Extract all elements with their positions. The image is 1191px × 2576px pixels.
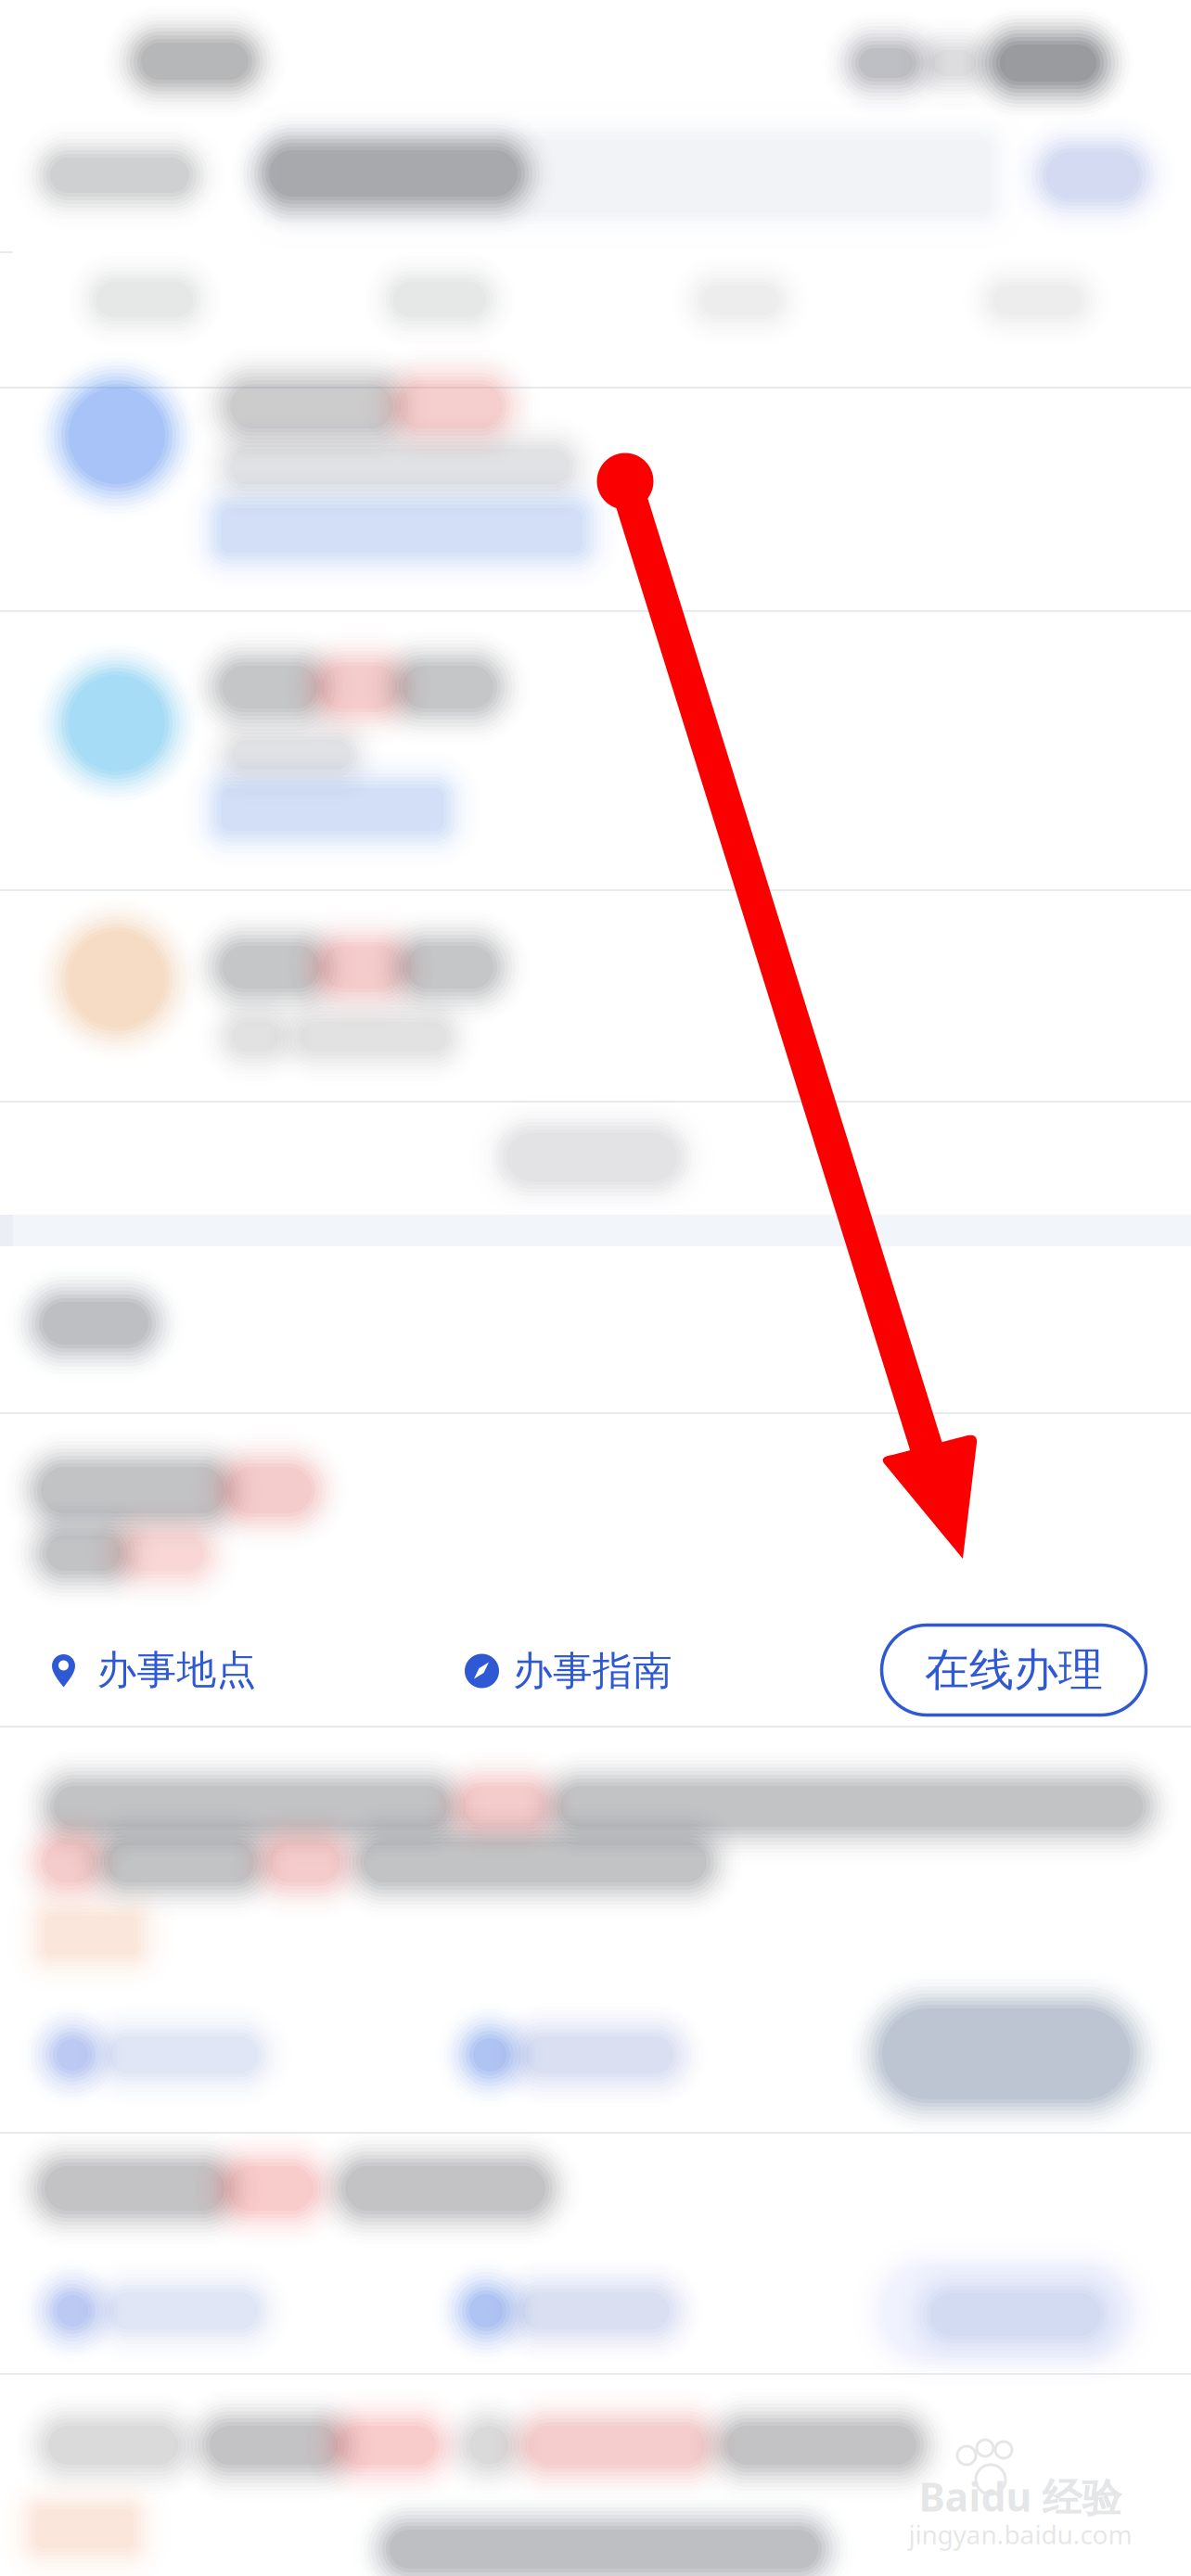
button[interactable]: 办事指南结果 xyxy=(0,1419,1191,1613)
button[interactable]: 办事指南 xyxy=(442,2268,711,2361)
button[interactable]: 切换地区 xyxy=(37,137,204,215)
button[interactable]: 搜索结果二 xyxy=(0,1753,1191,2003)
button[interactable]: 办事地点 xyxy=(28,2268,297,2361)
button[interactable]: 服务结果一 xyxy=(0,389,1191,610)
button[interactable]: 服务 xyxy=(298,256,595,388)
button[interactable]: 资讯 xyxy=(595,256,893,388)
staticText: jingyan.baidu.com xyxy=(909,2517,1132,2552)
button[interactable]: 服务结果三 xyxy=(0,892,1191,1100)
button[interactable]: 搜索结果三 xyxy=(0,2142,1191,2281)
button[interactable]: 在线办理 xyxy=(876,2010,1154,2107)
button[interactable]: 服务结果二 xyxy=(0,613,1191,888)
button[interactable]: 办事地点 xyxy=(28,1621,297,1723)
staticText: 办事地点 xyxy=(97,1646,256,1694)
button[interactable]: 搜索框 xyxy=(269,137,1002,215)
button[interactable]: 办事指南 xyxy=(436,1621,705,1723)
staticText: Baidu 经验 xyxy=(919,2470,1122,2523)
button[interactable]: 查看更多 xyxy=(490,1124,694,1191)
button[interactable]: 在线办理 xyxy=(863,2266,1152,2359)
button[interactable]: 部门 xyxy=(893,256,1191,388)
button[interactable]: 搜索 xyxy=(1037,145,1148,208)
staticText: 在线办理 xyxy=(925,1643,1103,1697)
button[interactable]: 在线办理 xyxy=(879,1623,1148,1715)
button[interactable]: 全部 xyxy=(0,256,298,388)
staticText: 办事指南 xyxy=(513,1647,672,1695)
button[interactable]: 办事指南 xyxy=(445,2012,714,2105)
button[interactable]: 办事地点 xyxy=(28,2012,297,2105)
